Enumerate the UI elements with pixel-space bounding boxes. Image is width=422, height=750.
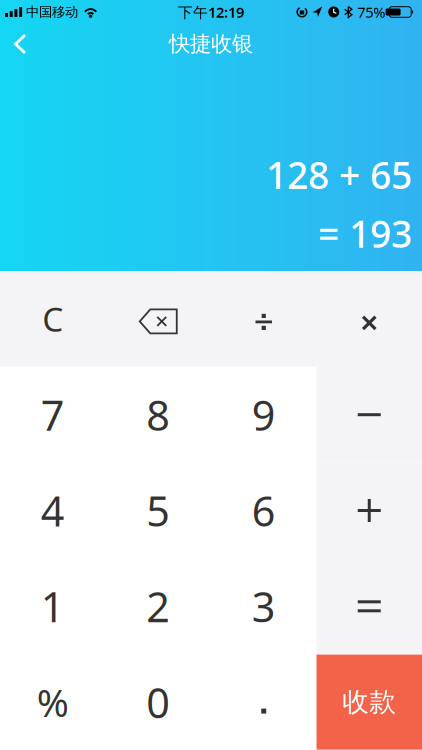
- button[interactable]: Divide: [211, 271, 316, 367]
- button[interactable]: Back: [0, 23, 26, 64]
- button[interactable]: Equals: [316, 558, 422, 654]
- staticText: 8: [146, 387, 170, 442]
- button[interactable]: Multiply: [316, 271, 422, 367]
- staticText: 中国移动: [26, 4, 78, 20]
- staticText: 3: [252, 579, 276, 634]
- staticText: 下午12:19: [178, 2, 244, 22]
- staticText: = 193: [318, 208, 412, 258]
- button[interactable]: 5: [105, 463, 211, 558]
- button[interactable]: 7: [0, 367, 105, 463]
- staticText: %: [37, 676, 69, 728]
- staticText: 收款: [342, 686, 396, 718]
- staticText: 9: [252, 387, 276, 442]
- button[interactable]: 8: [105, 367, 211, 463]
- button[interactable]: 3: [211, 558, 316, 654]
- staticText: 5: [146, 483, 170, 538]
- button[interactable]: Backspace: [105, 271, 211, 367]
- button[interactable]: 9: [211, 367, 316, 463]
- staticText: 7: [41, 387, 65, 442]
- staticText: 快捷收银: [169, 31, 253, 57]
- button[interactable]: C: [0, 271, 105, 367]
- button[interactable]: 4: [0, 463, 105, 558]
- staticText: 75%: [357, 2, 385, 22]
- button[interactable]: 6: [211, 463, 316, 558]
- button[interactable]: 收款: [316, 655, 422, 750]
- button[interactable]: 1: [0, 558, 105, 654]
- staticText: 6: [252, 483, 276, 538]
- staticText: 0: [146, 675, 170, 730]
- button[interactable]: Plus: [316, 463, 422, 558]
- button[interactable]: 0: [105, 654, 211, 750]
- button[interactable]: Decimal point: [211, 654, 316, 750]
- staticText: 2: [146, 579, 170, 634]
- staticText: 1: [41, 579, 65, 634]
- button[interactable]: 2: [105, 558, 211, 654]
- staticText: C: [42, 297, 63, 341]
- button[interactable]: %: [0, 654, 105, 750]
- staticText: 128 + 65: [266, 150, 412, 199]
- staticText: 4: [41, 483, 65, 538]
- button[interactable]: Minus: [316, 367, 422, 463]
